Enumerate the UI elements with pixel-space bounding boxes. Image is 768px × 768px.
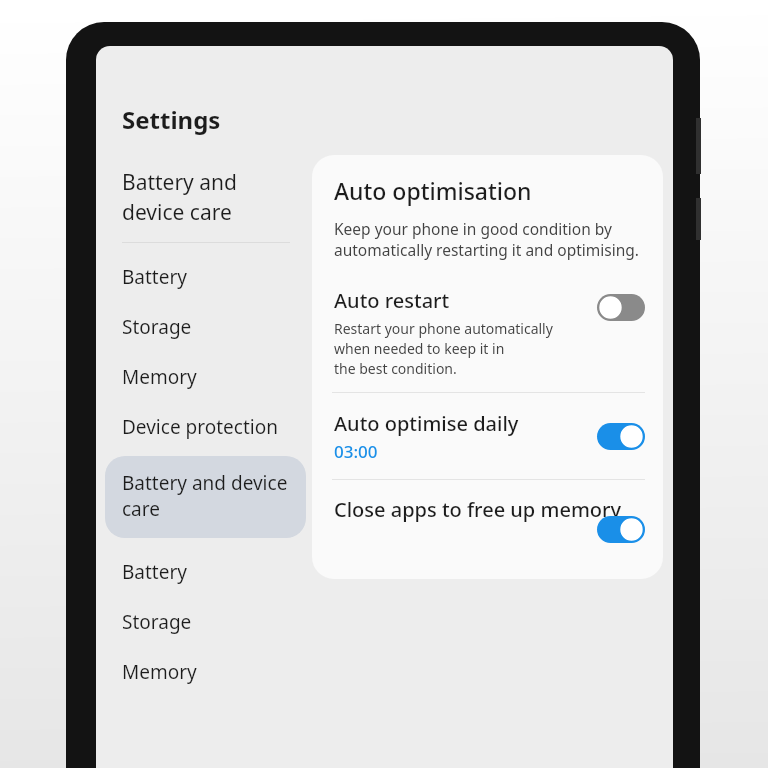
staticText: Settings (122, 103, 221, 136)
staticText: Keep your phone in good condition by aut… (334, 218, 639, 261)
staticText: Battery and device care (122, 470, 288, 522)
staticText: Memory (122, 364, 197, 390)
staticText: Restart your phone automatically when ne… (334, 319, 553, 378)
staticText: Auto optimise daily (334, 410, 519, 437)
staticText: Device protection (122, 414, 278, 440)
staticText: Storage (122, 609, 192, 635)
button[interactable]: Battery and device care (96, 168, 316, 226)
button[interactable]: Switch on (597, 423, 645, 450)
staticText: Battery and device care (122, 168, 237, 226)
button[interactable]: Memory (96, 656, 316, 688)
staticText: Auto restart (334, 287, 450, 314)
staticText: Battery (122, 264, 187, 290)
staticText: Auto optimisation (334, 175, 532, 206)
staticText: Battery (122, 559, 187, 585)
staticText: Close apps to free up memory (334, 496, 622, 523)
button[interactable]: Battery (96, 556, 316, 588)
button[interactable]: Switch off (597, 294, 645, 321)
button[interactable]: Device protection (96, 411, 316, 443)
button[interactable]: Close apps to free up memory (312, 494, 663, 523)
button[interactable]: Memory (96, 361, 316, 393)
button[interactable]: Switch on (597, 516, 645, 543)
button[interactable]: Auto restart (312, 287, 663, 378)
button[interactable]: Battery (96, 261, 316, 293)
button[interactable]: Battery and device care (105, 456, 306, 538)
button[interactable]: Storage (96, 606, 316, 638)
staticText: 03:00 (334, 440, 378, 463)
button[interactable]: Auto optimise daily (312, 410, 663, 463)
button[interactable]: Storage (96, 311, 316, 343)
staticText: Memory (122, 659, 197, 685)
staticText: Storage (122, 314, 192, 340)
